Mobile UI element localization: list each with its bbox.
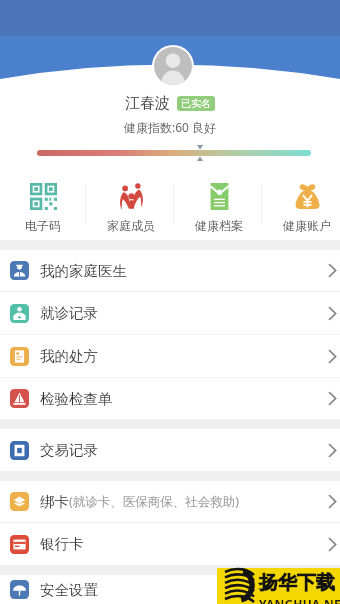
button[interactable]: 就诊记录 bbox=[0, 292, 340, 334]
staticText: 就诊记录 bbox=[40, 304, 98, 322]
staticText: 扬华下载 bbox=[259, 571, 335, 595]
staticText: 银行卡 bbox=[40, 535, 84, 553]
button[interactable]: 家庭成员 bbox=[87, 176, 175, 240]
staticText: 健康账户 bbox=[283, 218, 331, 233]
button[interactable]: 我的处方 bbox=[0, 335, 340, 377]
staticText: 健康指数:60 良好 bbox=[124, 119, 217, 135]
staticText: YANGHUA.NET bbox=[259, 596, 340, 604]
button[interactable]: 健康账户 bbox=[263, 176, 340, 240]
button[interactable]: 电子码 bbox=[0, 176, 87, 240]
staticText: 交易记录 bbox=[40, 441, 98, 459]
staticText: 安全设置 bbox=[40, 581, 98, 599]
staticText: 江春波 bbox=[125, 94, 170, 113]
staticText: 电子码 bbox=[25, 218, 61, 233]
staticText: 绑卡 bbox=[40, 493, 69, 511]
button[interactable]: 银行卡 bbox=[0, 523, 340, 565]
button[interactable]: 健康档案 bbox=[175, 176, 263, 240]
button[interactable]: 绑卡 bbox=[0, 481, 340, 522]
button[interactable]: 交易记录 bbox=[0, 429, 340, 471]
staticText: 我的家庭医生 bbox=[40, 262, 127, 280]
staticText: (就诊卡、医保商保、社会救助) bbox=[69, 493, 240, 510]
staticText: 已实名 bbox=[181, 97, 211, 110]
staticText: 家庭成员 bbox=[107, 218, 155, 233]
button[interactable]: 安全设置 bbox=[0, 575, 340, 604]
staticText: 我的处方 bbox=[40, 347, 98, 365]
staticText: 健康档案 bbox=[195, 218, 243, 233]
button[interactable]: 检验检查单 bbox=[0, 378, 340, 419]
button[interactable]: 我的家庭医生 bbox=[0, 250, 340, 291]
staticText: 检验检查单 bbox=[40, 390, 113, 408]
